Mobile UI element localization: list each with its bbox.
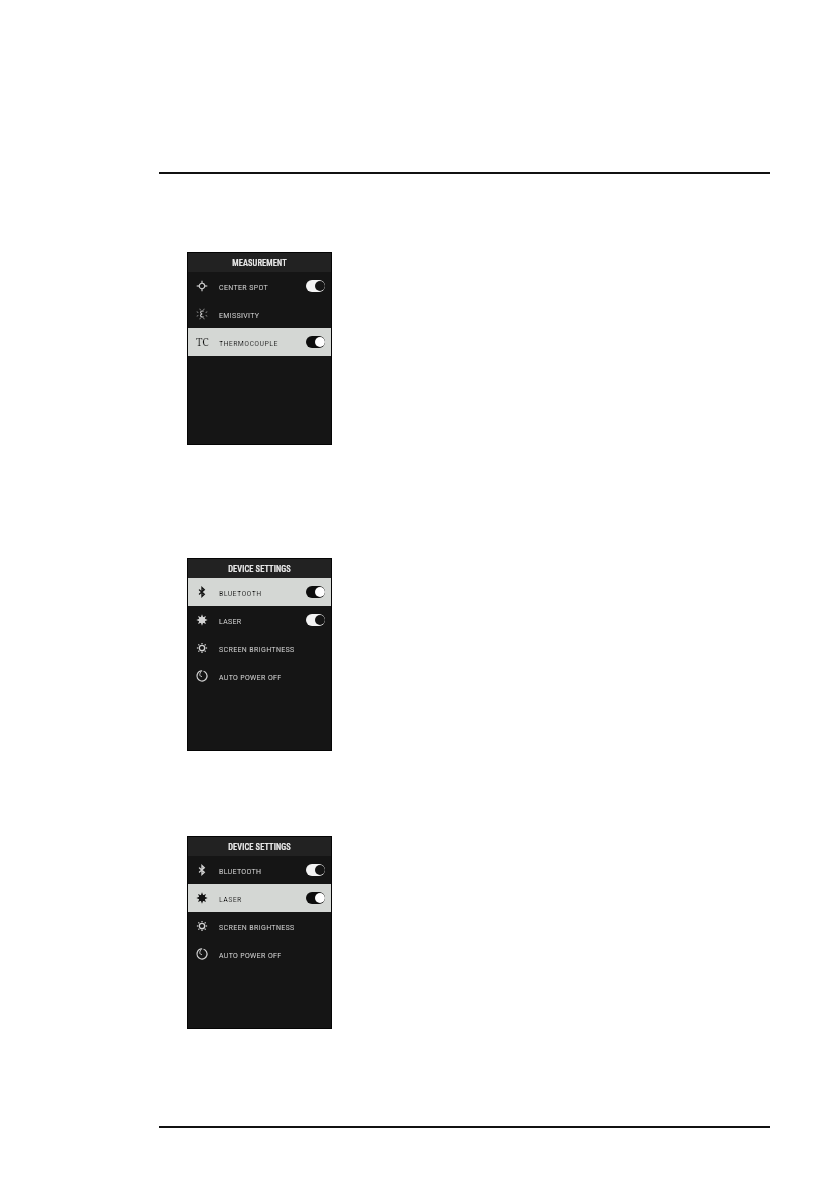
button[interactable]: Toggle CENTER SPOT	[306, 280, 325, 292]
button[interactable]: MEASUREMENT	[188, 253, 331, 272]
staticText: BLUETOOTH	[219, 588, 262, 597]
button[interactable]: DEVICE SETTINGS	[188, 837, 331, 856]
button[interactable]: Toggle LASER	[306, 892, 325, 904]
staticText: DEVICE SETTINGS	[228, 842, 291, 852]
button[interactable]: TC	[188, 328, 331, 356]
staticText: TC	[196, 335, 209, 349]
staticText: SCREEN BRIGHTNESS	[219, 922, 295, 931]
button[interactable]: Toggle LASER	[306, 614, 325, 626]
staticText: DEVICE SETTINGS	[228, 564, 291, 574]
button[interactable]: AUTO POWER OFF	[188, 662, 331, 690]
staticText: AUTO POWER OFF	[219, 950, 282, 959]
staticText: EMISSIVITY	[219, 310, 260, 319]
staticText: LASER	[219, 894, 242, 903]
button[interactable]: Toggle BLUETOOTH	[306, 586, 325, 598]
button[interactable]: Toggle THERMOCOUPLE	[306, 336, 325, 348]
button[interactable]: BLUETOOTH	[188, 856, 331, 884]
button[interactable]: AUTO POWER OFF	[188, 940, 331, 968]
button[interactable]: LASER	[188, 884, 331, 912]
staticText: CENTER SPOT	[219, 282, 268, 291]
staticText: THERMOCOUPLE	[219, 338, 278, 347]
staticText: LASER	[219, 616, 242, 625]
button[interactable]: SCREEN BRIGHTNESS	[188, 634, 331, 662]
button[interactable]: DEVICE SETTINGS	[188, 559, 331, 578]
staticText: MEASUREMENT	[232, 258, 287, 268]
button[interactable]: CENTER SPOT	[188, 272, 331, 300]
staticText: SCREEN BRIGHTNESS	[219, 644, 295, 653]
button[interactable]: BLUETOOTH	[188, 578, 331, 606]
staticText: BLUETOOTH	[219, 866, 262, 875]
staticText: AUTO POWER OFF	[219, 672, 282, 681]
button[interactable]: LASER	[188, 606, 331, 634]
button[interactable]: EMISSIVITY	[188, 300, 331, 328]
button[interactable]: Toggle BLUETOOTH	[306, 864, 325, 876]
button[interactable]: SCREEN BRIGHTNESS	[188, 912, 331, 940]
